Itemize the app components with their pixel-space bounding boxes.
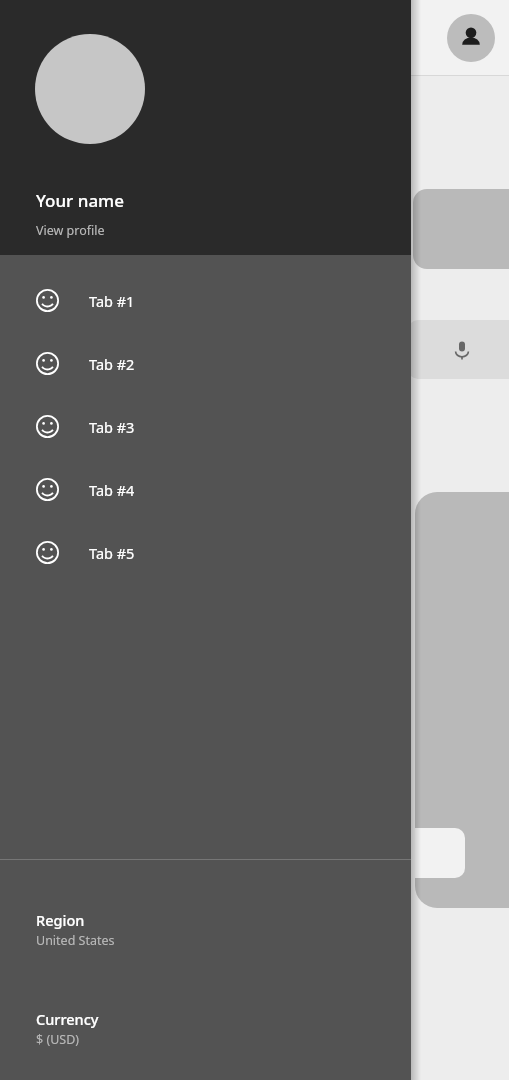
staticText: Region [36, 910, 85, 930]
button[interactable]: Account [447, 14, 495, 62]
staticText: United States [36, 932, 115, 949]
button[interactable]: Tab #2 [0, 332, 411, 395]
staticText: Your name [36, 189, 124, 212]
staticText: Tab #2 [89, 354, 135, 374]
button[interactable]: Tab #5 [0, 521, 411, 584]
button[interactable]: Currency [0, 997, 411, 1060]
button[interactable]: Region [0, 898, 411, 961]
staticText: Currency [36, 1009, 99, 1029]
staticText: Tab #3 [89, 417, 135, 437]
button[interactable]: Tab #4 [0, 458, 411, 521]
staticText: Tab #1 [89, 291, 135, 311]
button[interactable]: Tab #1 [0, 269, 411, 332]
staticText: Tab #5 [89, 543, 135, 563]
staticText: Tab #4 [89, 480, 135, 500]
button[interactable]: View profile [36, 222, 105, 239]
button[interactable]: Tab #3 [0, 395, 411, 458]
button[interactable]: Voice search [408, 320, 509, 379]
staticText: View profile [36, 222, 105, 239]
staticText: $ (USD) [36, 1031, 80, 1048]
